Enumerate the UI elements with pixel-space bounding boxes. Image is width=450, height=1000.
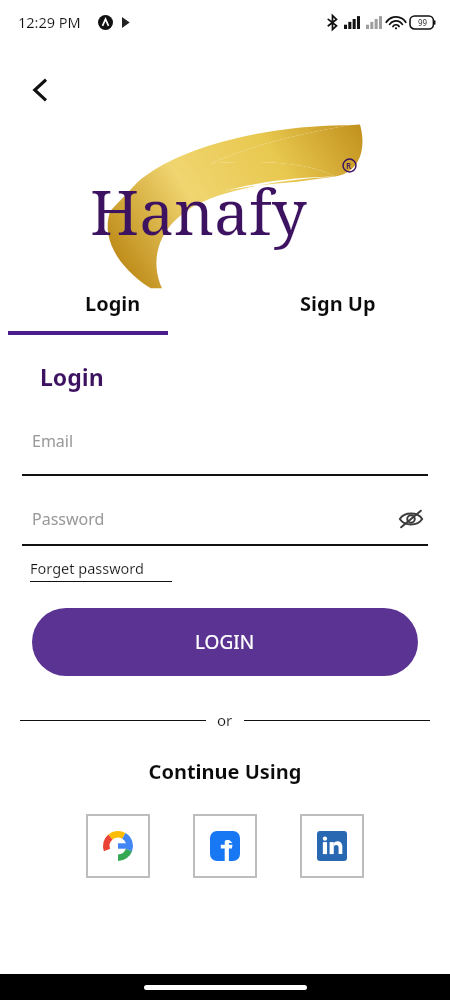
button[interactable]: Forget password bbox=[30, 558, 172, 582]
staticText: Forget password bbox=[30, 558, 144, 578]
staticText: LOGIN bbox=[195, 629, 255, 655]
staticText: Hanafy bbox=[90, 169, 307, 253]
button[interactable]: Login bbox=[0, 290, 225, 317]
staticText: Sign Up bbox=[300, 290, 376, 317]
staticText: R bbox=[346, 160, 352, 171]
staticText: Login bbox=[40, 361, 104, 392]
button[interactable]: Email bbox=[22, 430, 428, 476]
staticText: or bbox=[217, 710, 233, 730]
staticText: 12:29 PM bbox=[18, 12, 81, 32]
staticText: Email bbox=[32, 430, 74, 452]
button[interactable]: Sign in with LinkedIn bbox=[300, 814, 364, 878]
staticText: 99 bbox=[418, 17, 428, 28]
button[interactable]: Back bbox=[16, 66, 64, 114]
button[interactable]: Sign in with Google bbox=[86, 814, 150, 878]
button[interactable]: Password bbox=[32, 508, 394, 530]
staticText: Login bbox=[85, 290, 141, 317]
button[interactable]: LOGIN bbox=[32, 608, 418, 676]
button[interactable]: Sign Up bbox=[225, 290, 450, 317]
button[interactable]: Show password bbox=[394, 502, 428, 536]
button[interactable]: Sign in with Facebook bbox=[193, 814, 257, 878]
staticText: Continue Using bbox=[0, 758, 450, 785]
